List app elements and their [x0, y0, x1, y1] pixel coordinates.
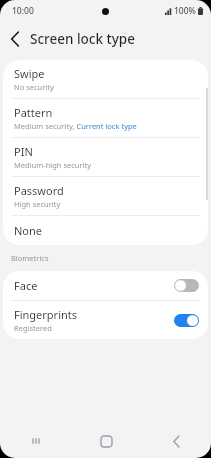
staticText: Password: [14, 183, 64, 198]
staticText: Biometrics: [11, 253, 49, 263]
staticText: Fingerprints: [14, 307, 78, 322]
staticText: No security: [14, 82, 54, 92]
staticText: Pattern: [14, 105, 53, 120]
staticText: 100%: [174, 5, 196, 17]
staticText: 10:00: [12, 5, 34, 17]
staticText: Face: [14, 278, 38, 293]
staticText: Screen lock type: [30, 30, 135, 48]
button[interactable]: Password: [3, 177, 208, 215]
button[interactable]: None: [3, 216, 208, 245]
button[interactable]: Home: [71, 424, 141, 458]
staticText: PIN: [14, 144, 33, 159]
button[interactable]: Pattern: [3, 99, 208, 137]
button[interactable]: Swipe: [3, 60, 208, 98]
staticText: None: [14, 223, 43, 238]
button[interactable]: PIN: [3, 138, 208, 176]
button[interactable]: Fingerprints: [3, 301, 208, 339]
button[interactable]: Back: [0, 24, 30, 54]
staticText: Swipe: [14, 66, 45, 81]
button[interactable]: Back: [141, 424, 211, 458]
staticText: Medium security, Current lock type: [14, 121, 137, 131]
button[interactable]: On: [174, 314, 199, 327]
button[interactable]: Face: [3, 271, 208, 300]
button[interactable]: Recents: [0, 424, 71, 458]
staticText: Registered: [14, 323, 52, 333]
button[interactable]: Off: [174, 279, 199, 292]
staticText: Medium-high security: [14, 160, 92, 170]
staticText: High security: [14, 199, 61, 209]
